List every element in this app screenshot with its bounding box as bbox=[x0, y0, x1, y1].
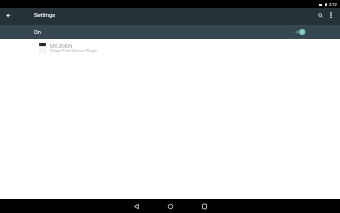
button[interactable]: On bbox=[0, 25, 340, 39]
button[interactable]: More options bbox=[324, 8, 337, 22]
button[interactable]: Back bbox=[0, 8, 17, 22]
staticText: Sharp Print Service Plugin bbox=[50, 48, 98, 53]
staticText: Settings bbox=[34, 12, 56, 19]
staticText: On bbox=[34, 29, 41, 35]
button[interactable]: Search bbox=[313, 8, 327, 22]
staticText: 2:12 bbox=[329, 2, 337, 7]
staticText: MX-2640N bbox=[50, 44, 73, 50]
button[interactable]: Home bbox=[163, 199, 178, 213]
button[interactable]: Recents bbox=[197, 199, 212, 213]
button[interactable]: MX-2640N bbox=[0, 39, 340, 57]
button[interactable]: Back bbox=[129, 199, 144, 213]
